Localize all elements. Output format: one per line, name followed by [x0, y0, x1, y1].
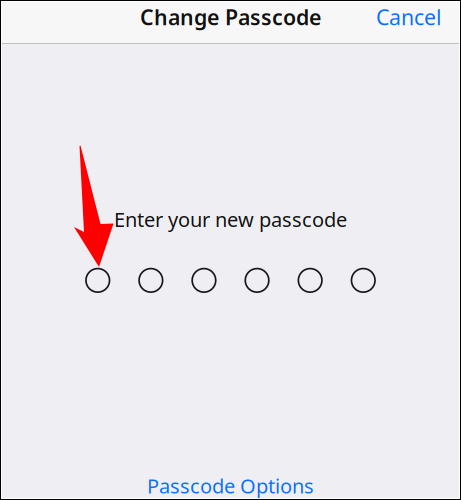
- staticText: Change Passcode: [140, 3, 321, 31]
- button[interactable]: Passcode Options: [133, 465, 328, 500]
- button[interactable]: Cancel: [366, 0, 452, 37]
- staticText: Passcode Options: [147, 472, 314, 499]
- staticText: Enter your new passcode: [114, 206, 347, 233]
- staticText: Cancel: [376, 3, 442, 31]
